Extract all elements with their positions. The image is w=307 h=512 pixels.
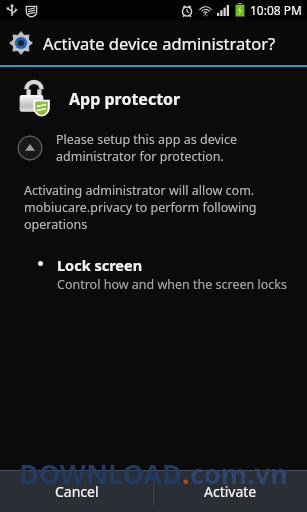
staticText: Lock screen xyxy=(57,255,143,275)
staticText: Activate xyxy=(204,482,257,501)
staticText: Activating administrator will allow com.… xyxy=(24,182,291,233)
staticText: Activate device administrator? xyxy=(43,32,276,54)
staticText: com.vn xyxy=(190,455,288,492)
button[interactable]: Lock screen xyxy=(0,253,307,295)
button[interactable]: Activate xyxy=(154,471,307,512)
staticText: Control how and when the screen locks xyxy=(57,276,287,293)
staticText: . xyxy=(182,455,190,492)
staticText: 10:08 PM xyxy=(250,2,302,18)
staticText: Cancel xyxy=(55,482,99,501)
staticText: App protector xyxy=(69,88,181,110)
button[interactable]: Cancel xyxy=(0,471,153,512)
staticText: Please setup this app as device administ… xyxy=(56,131,293,164)
staticText: DOWNLOAD xyxy=(19,455,182,492)
